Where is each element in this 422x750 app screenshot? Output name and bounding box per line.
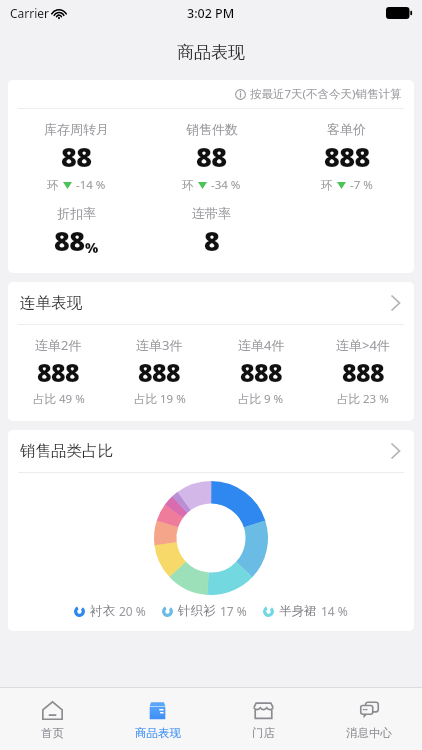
staticText: 888 [324, 138, 370, 175]
staticText: % [85, 238, 99, 257]
staticText: 88 [196, 138, 227, 175]
staticText: 针织衫 [178, 603, 216, 619]
staticText: 888 [138, 355, 181, 389]
staticText: 8 [204, 222, 220, 259]
staticText: 17 % [220, 603, 247, 619]
staticText: 888 [342, 355, 385, 389]
button[interactable]: 门店 [210, 688, 316, 750]
button[interactable]: 首页 [0, 688, 105, 750]
staticText: 环 [47, 178, 59, 192]
staticText: 销售件数 [186, 121, 238, 137]
staticText: 客单价 [327, 121, 366, 137]
staticText: 折扣率 [57, 205, 96, 221]
staticText: 库存周转月 [44, 121, 109, 137]
staticText: 消息中心 [346, 726, 392, 740]
staticText: Carrier [10, 5, 50, 21]
staticText: 14 % [321, 603, 348, 619]
staticText: 门店 [252, 726, 275, 740]
staticText: 按最近7天(不含今天)销售计算 [250, 86, 402, 102]
staticText: 88 [61, 138, 92, 175]
staticText: 衬衣 [90, 603, 115, 619]
staticText: 首页 [41, 726, 64, 740]
staticText: 环 [182, 178, 194, 192]
button[interactable]: 商品表现 [105, 688, 210, 750]
staticText: 888 [240, 355, 283, 389]
staticText: 商品表现 [177, 42, 245, 63]
staticText: 占比 19 % [134, 391, 186, 407]
staticText: 20 % [119, 603, 146, 619]
staticText: 3:02 PM [187, 5, 235, 22]
staticText: 连单3件 [136, 336, 183, 354]
staticText: 占比 49 % [33, 391, 85, 407]
staticText: -7 % [350, 177, 373, 193]
staticText: 环 [321, 178, 333, 192]
staticText: -14 % [76, 177, 106, 193]
staticText: 连单表现 [20, 293, 82, 313]
staticText: 连带率 [192, 205, 231, 221]
staticText: 商品表现 [135, 726, 181, 740]
staticText: 占比 9 % [238, 391, 284, 407]
staticText: 连单2件 [35, 336, 82, 354]
staticText: -34 % [211, 177, 241, 193]
staticText: 占比 23 % [337, 391, 389, 407]
button[interactable]: 连单表现 [8, 282, 414, 324]
button[interactable]: 销售品类占比 [8, 430, 414, 472]
staticText: 888 [37, 355, 80, 389]
button[interactable]: 消息中心 [316, 688, 422, 750]
staticText: 88 [54, 222, 85, 259]
staticText: 连单4件 [238, 336, 285, 354]
staticText: 连单>4件 [336, 336, 390, 354]
staticText: 半身裙 [279, 603, 317, 619]
staticText: 销售品类占比 [20, 441, 113, 461]
